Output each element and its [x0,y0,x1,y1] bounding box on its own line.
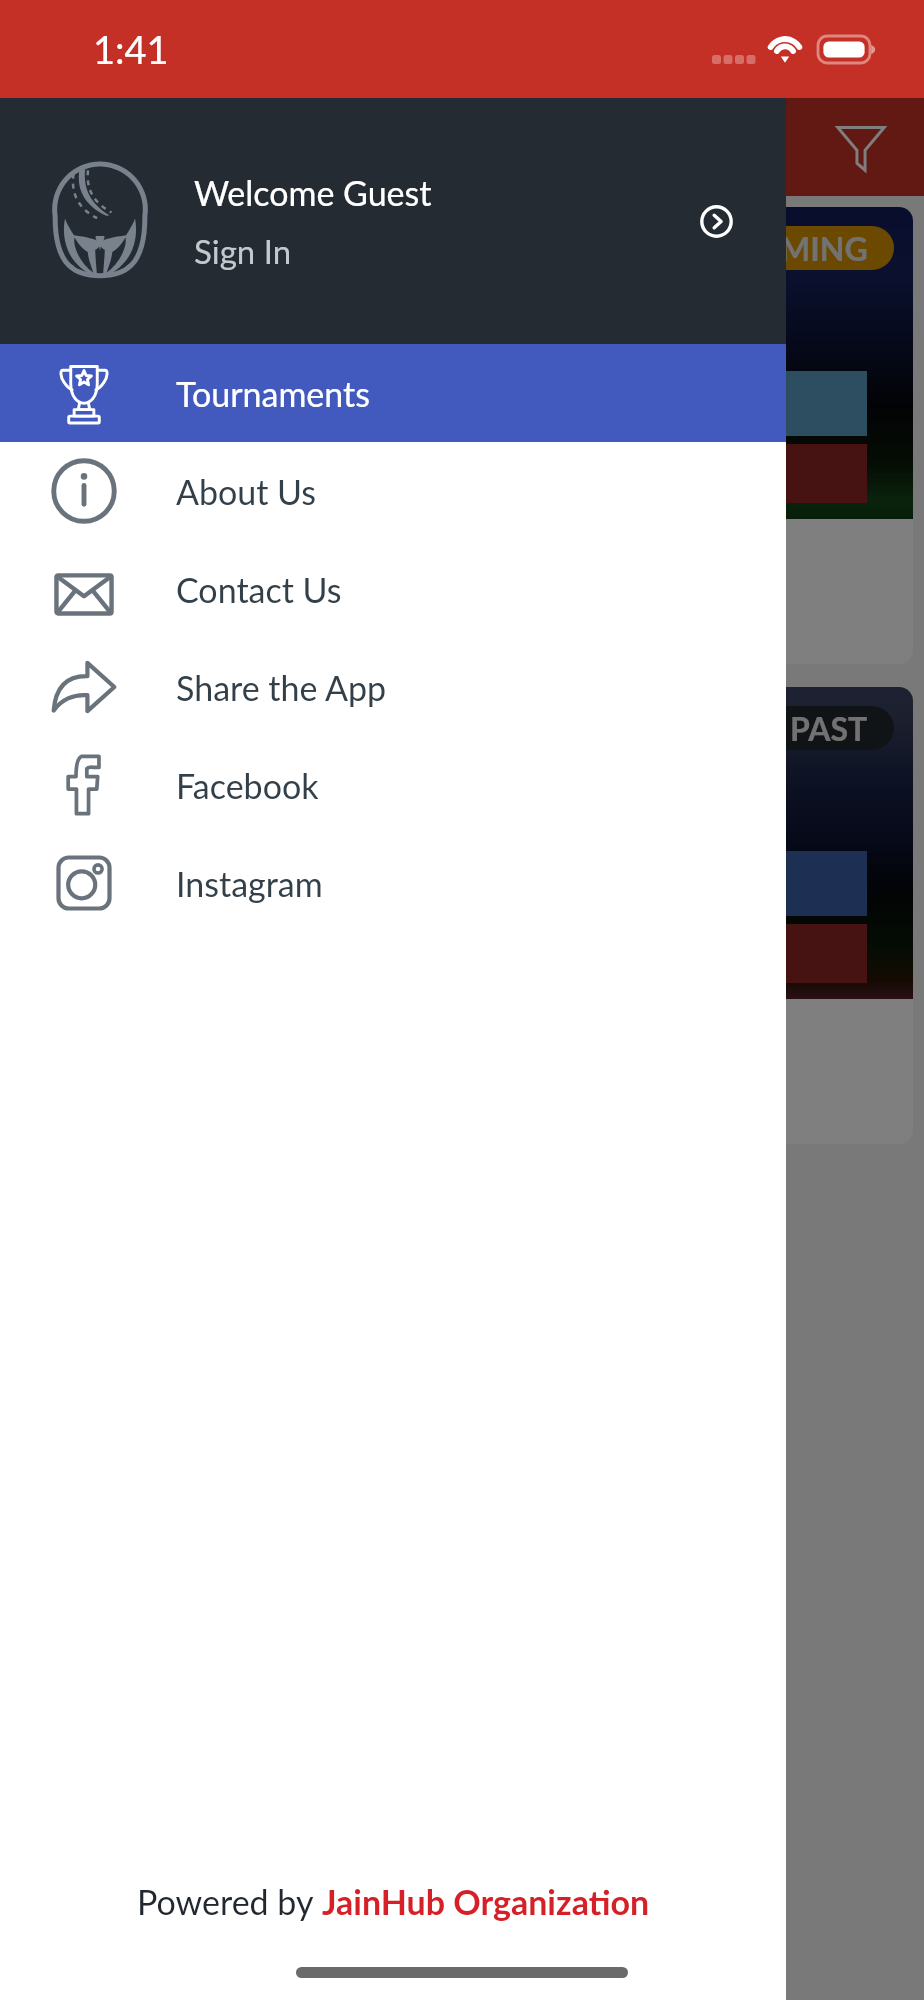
staticText: 1:41 [93,26,169,72]
button[interactable]: Share the App [0,638,786,736]
button[interactable]: About Us [0,442,786,540]
staticText: About Us [176,471,317,512]
button[interactable]: Contact Us [0,540,786,638]
staticText: Powered by [137,1881,322,1922]
staticText: Instagram [176,863,323,904]
button[interactable]: Welcome Guest [0,98,786,344]
staticText: Sign In [194,231,292,271]
staticText: Contact Us [176,569,342,610]
button[interactable]: Instagram [0,834,786,932]
staticText: Welcome Guest [194,172,432,213]
button[interactable]: PAST [11,687,913,1144]
staticText: JainHub Organization [322,1881,650,1922]
button[interactable]: UPCOMING [11,207,913,664]
staticText: UPCOMING [690,229,868,267]
staticText: Tournaments [176,373,370,414]
button[interactable]: Filter [826,112,896,182]
button[interactable]: Sign In [688,193,744,249]
staticText: Facebook [176,765,319,806]
staticText: PAST [790,709,868,747]
button[interactable]: Tournaments [0,344,786,442]
staticText: Share the App [176,667,387,708]
button[interactable]: Facebook [0,736,786,834]
